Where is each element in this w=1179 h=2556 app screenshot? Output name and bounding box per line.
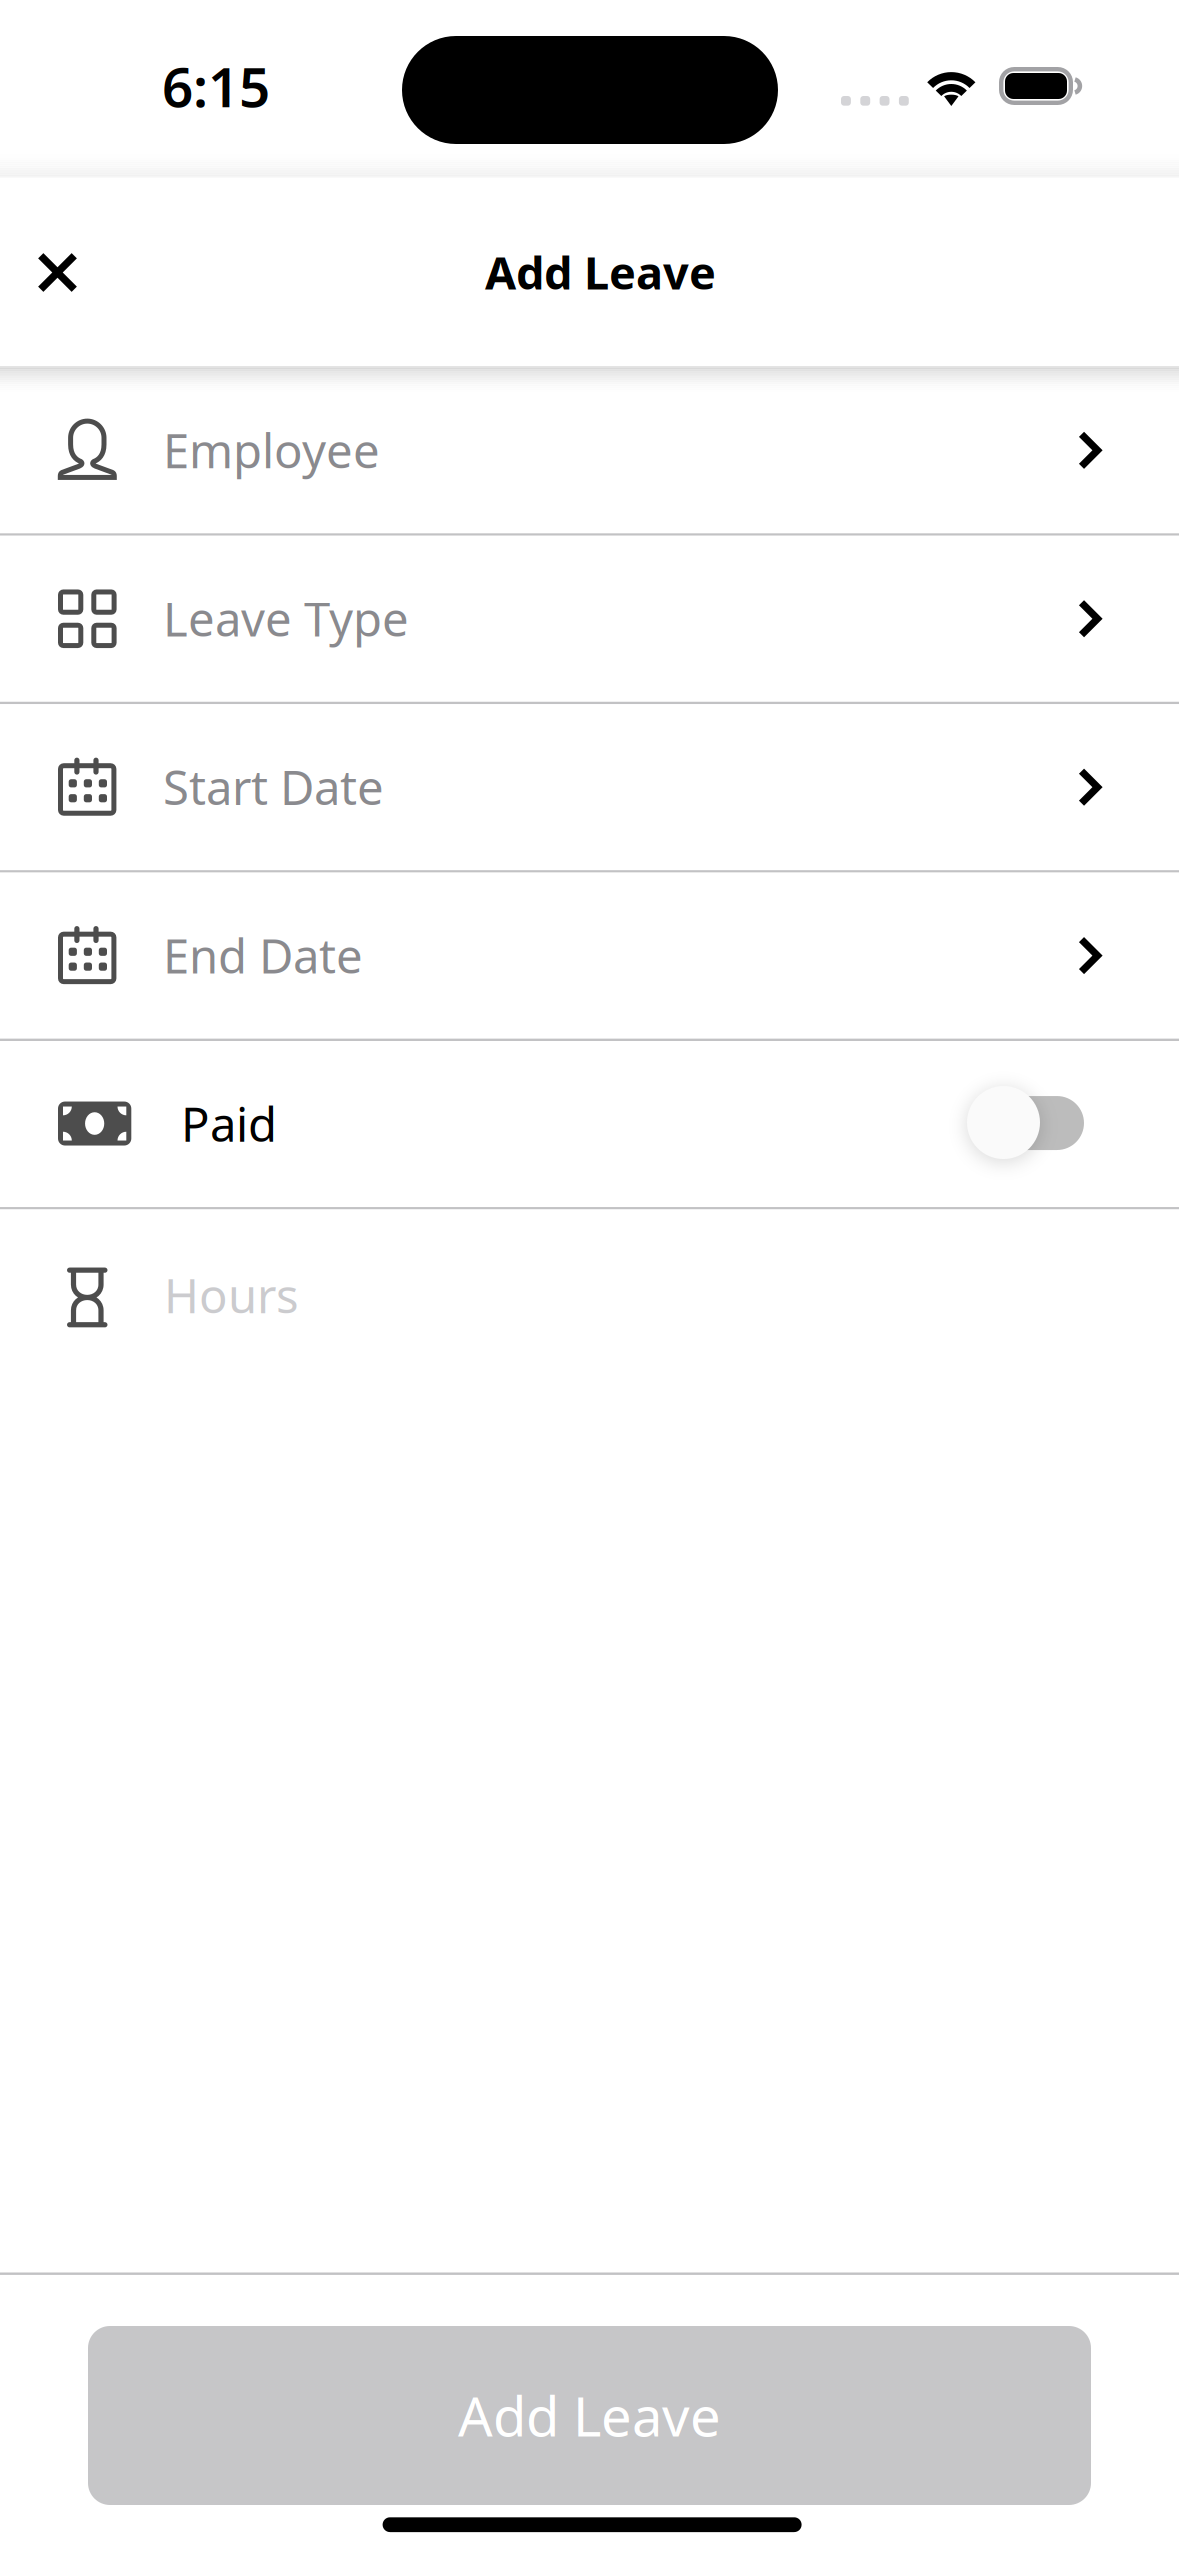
button[interactable]: Employee	[0, 367, 1179, 533]
button[interactable]: Paid	[967, 1083, 1087, 1163]
staticText: Start Date	[163, 754, 384, 819]
staticText: Paid	[181, 1091, 277, 1156]
staticText: Employee	[163, 418, 380, 482]
button[interactable]: Close	[0, 177, 116, 365]
staticText: Add Leave	[485, 241, 716, 303]
button[interactable]: End Date	[0, 873, 1179, 1039]
button[interactable]: Start Date	[0, 704, 1179, 870]
staticText: Add Leave	[458, 2378, 721, 2452]
button[interactable]: Leave Type	[0, 536, 1179, 702]
staticText: 6:15	[162, 49, 270, 123]
staticText: Leave Type	[163, 586, 409, 650]
button[interactable]: Add Leave	[88, 2326, 1091, 2505]
staticText: Hours	[164, 1263, 299, 1327]
staticText: End Date	[163, 923, 363, 987]
